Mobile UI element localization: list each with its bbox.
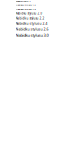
staticText: Nabidku stylusu 1.8 bbox=[15, 7, 35, 11]
staticText: Nabidku stylusu 3.0 bbox=[15, 32, 48, 38]
staticText: Nabidku stylusu 2.2 bbox=[15, 16, 44, 20]
staticText: Nabidku stylusu 1.6 bbox=[15, 3, 35, 6]
staticText: Nabidku stylusu 2.4 bbox=[15, 21, 47, 26]
staticText: Nabidku stylusu 2.0 bbox=[15, 12, 42, 15]
staticText: Nabidku stylusu 1.4 bbox=[15, 0, 30, 2]
staticText: Nabidku stylusu 2.6 bbox=[15, 27, 48, 31]
